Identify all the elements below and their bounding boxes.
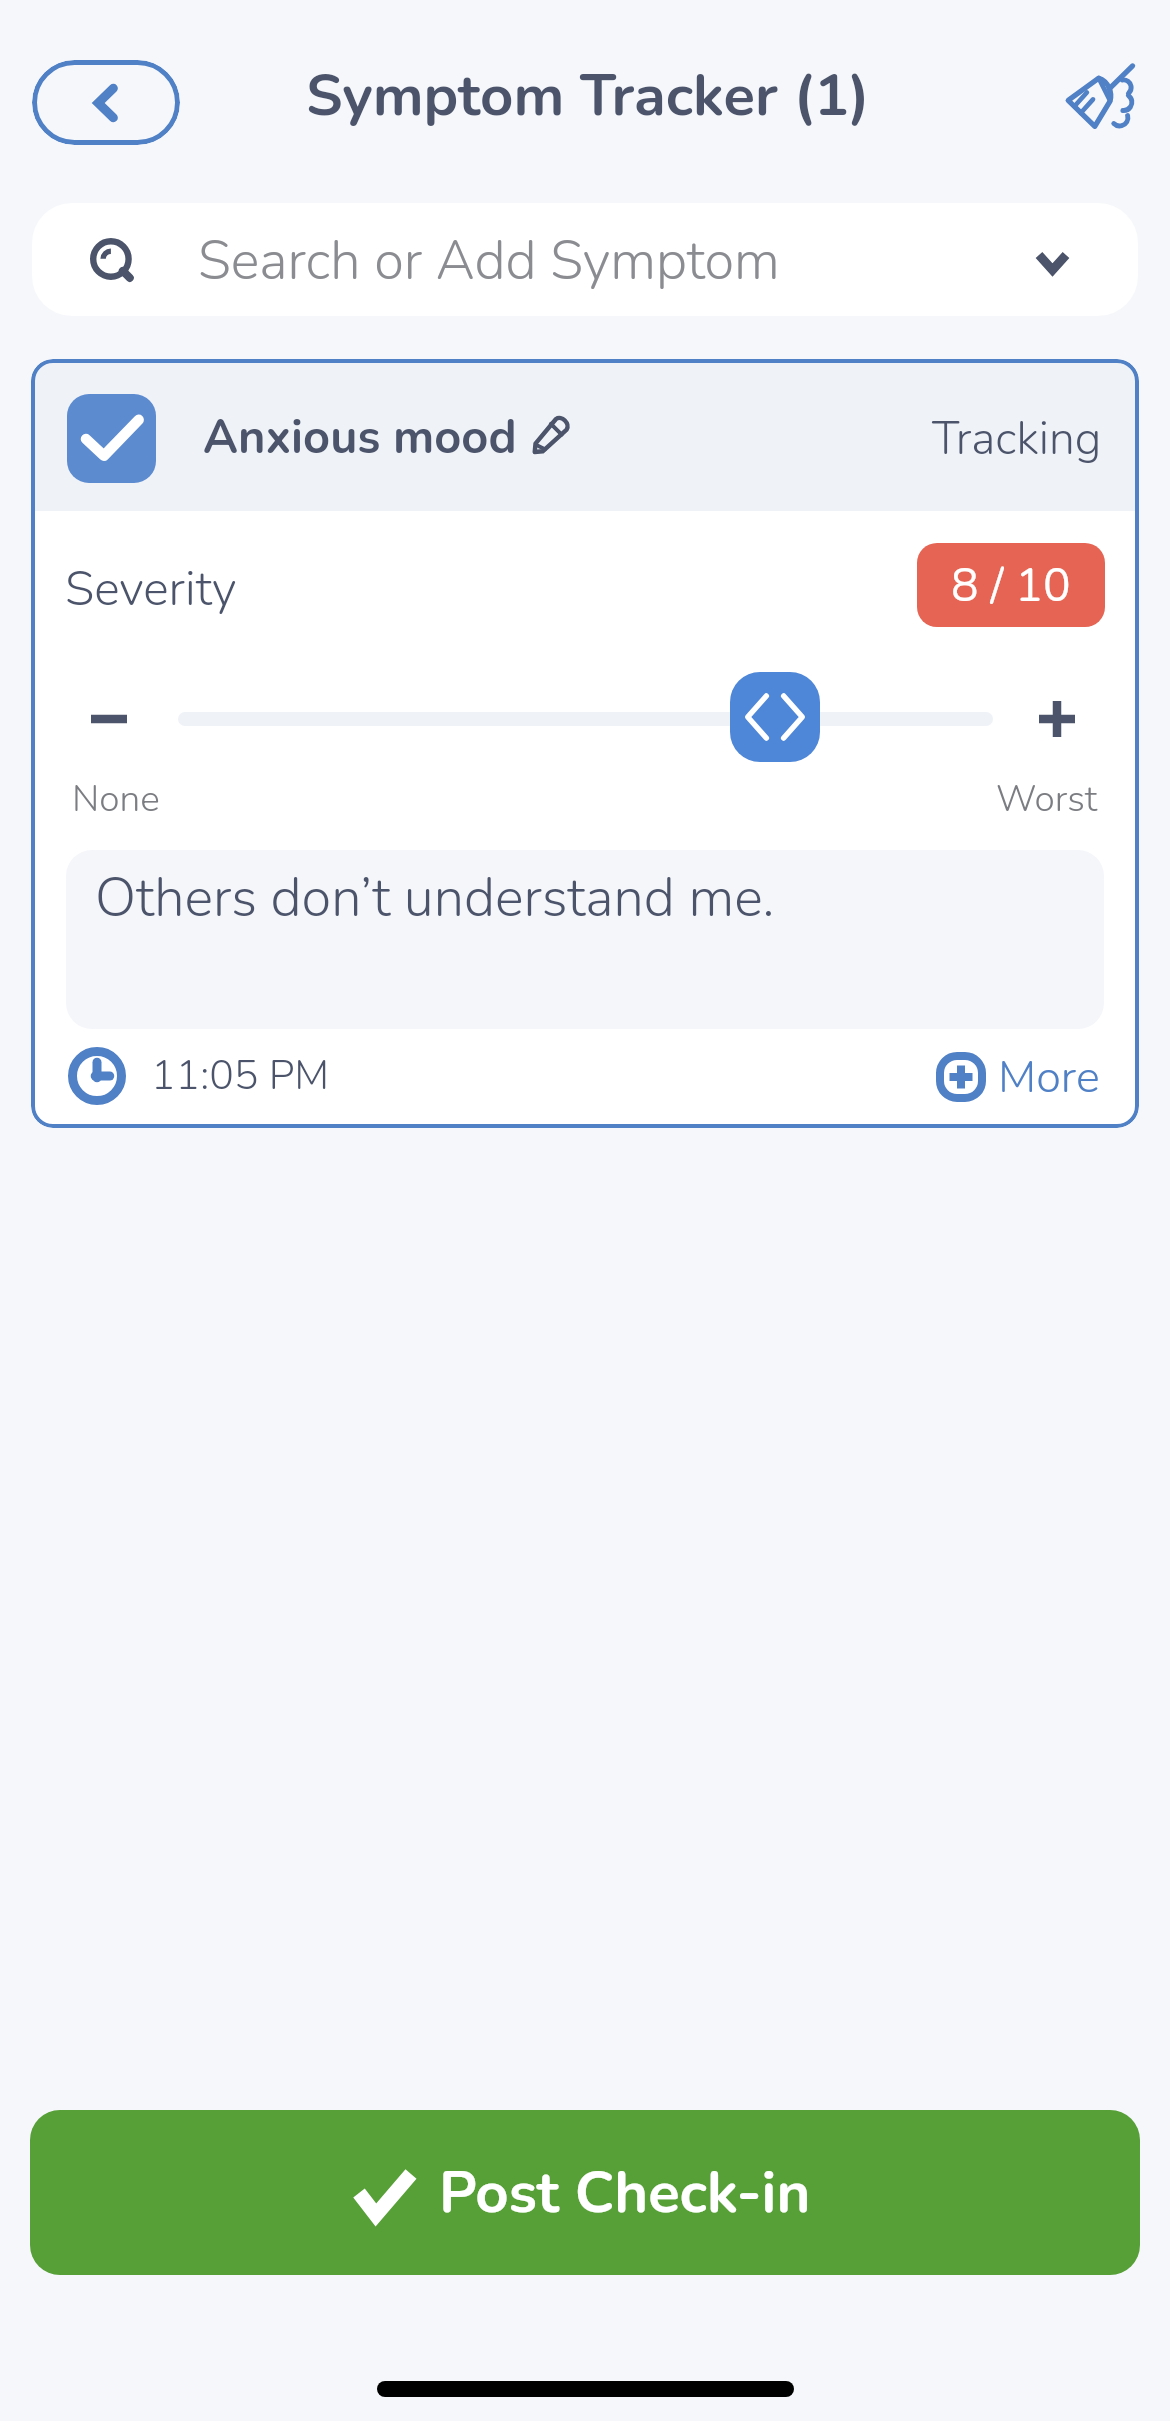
button[interactable]: Severity slider handle: [730, 672, 820, 762]
staticText: Worst: [996, 774, 1098, 824]
staticText: Symptom Tracker (1): [306, 56, 870, 135]
button[interactable]: Others don’t understand me.: [66, 850, 1104, 1029]
button[interactable]: Anxious mood: [31, 359, 1139, 511]
button[interactable]: Clear all: [1066, 63, 1138, 135]
staticText: Anxious mood: [203, 405, 517, 469]
button[interactable]: 8 / 10: [917, 543, 1105, 627]
button[interactable]: Search or Add Symptom: [32, 203, 1138, 316]
staticText: 11:05 PM: [151, 1048, 330, 1104]
staticText: Tracking: [932, 407, 1102, 470]
staticText: 8 / 10: [951, 554, 1071, 617]
staticText: Post Check-in: [439, 2153, 811, 2232]
button[interactable]: Back: [32, 60, 180, 145]
staticText: Search or Add Symptom: [198, 224, 780, 298]
staticText: Severity: [65, 556, 237, 621]
staticText: None: [72, 774, 160, 824]
staticText: Others don’t understand me.: [95, 861, 775, 935]
button[interactable]: Post Check-in: [30, 2110, 1140, 2275]
button[interactable]: Increase severity: [1017, 679, 1097, 759]
button[interactable]: More: [936, 1045, 1100, 1109]
staticText: More: [998, 1047, 1100, 1108]
button[interactable]: Decrease severity: [69, 679, 149, 759]
button[interactable]: 11:05 PM: [68, 1041, 330, 1111]
